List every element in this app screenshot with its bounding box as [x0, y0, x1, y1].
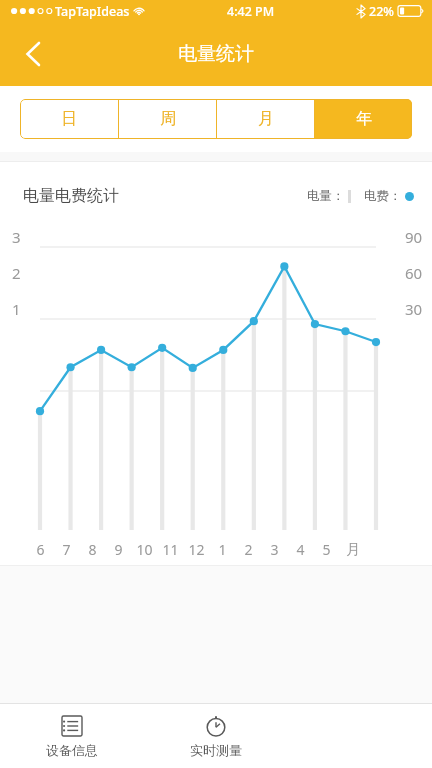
staticText: 30: [405, 299, 423, 319]
staticText: 日: [61, 109, 77, 129]
staticText: 4: [296, 540, 305, 559]
staticText: 2: [12, 263, 21, 283]
staticText: 22%: [369, 3, 394, 20]
staticText: 4:42 PM: [227, 3, 275, 20]
staticText: 5: [322, 540, 331, 559]
staticText: 月: [258, 109, 274, 129]
staticText: 11: [162, 540, 179, 559]
staticText: 年: [356, 109, 372, 129]
staticText: 3: [12, 227, 21, 247]
staticText: 60: [405, 263, 423, 283]
staticText: 电量：: [307, 188, 345, 204]
staticText: 7: [62, 540, 71, 559]
button[interactable]: 年: [315, 99, 412, 139]
staticText: 6: [36, 540, 45, 559]
staticText: TapTapIdeas: [55, 3, 130, 20]
staticText: 9: [114, 540, 123, 559]
staticText: 90: [405, 227, 423, 247]
button[interactable]: 日: [20, 99, 118, 139]
staticText: 月: [346, 541, 360, 559]
staticText: 3: [270, 540, 279, 559]
staticText: 电费：: [364, 188, 402, 204]
staticText: 2: [244, 540, 253, 559]
staticText: 电量电费统计: [23, 186, 119, 206]
button[interactable]: 实时测量: [144, 704, 288, 768]
staticText: 10: [136, 540, 153, 559]
staticText: 设备信息: [46, 742, 98, 758]
staticText: 1: [218, 540, 227, 559]
staticText: 1: [12, 299, 21, 319]
button[interactable]: 周: [119, 99, 216, 139]
button[interactable]: 月: [217, 99, 314, 139]
button[interactable]: Back: [8, 30, 56, 78]
staticText: 电量统计: [178, 42, 254, 66]
staticText: 12: [188, 540, 205, 559]
staticText: 周: [160, 109, 176, 129]
staticText: 8: [88, 540, 97, 559]
staticText: 实时测量: [190, 742, 242, 758]
button[interactable]: 设备信息: [0, 704, 144, 768]
